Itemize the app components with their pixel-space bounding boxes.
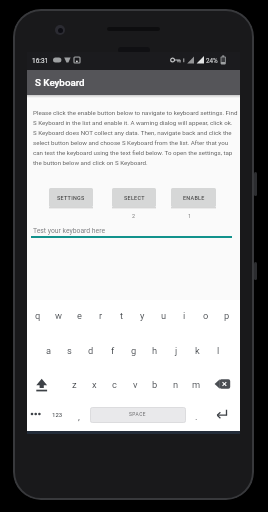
staticText: n [173,379,179,390]
button[interactable]: Test your keyboard here [31,222,237,239]
button[interactable]: SPACE [90,407,186,423]
staticText: SPACE [129,412,147,418]
button[interactable]: e [69,306,90,324]
button[interactable]: r [90,306,111,324]
button[interactable]: m [186,375,206,393]
staticText: 123 [52,411,63,418]
staticText: 24% [206,57,218,64]
staticText: e [77,310,82,321]
button[interactable]: b [145,375,165,393]
button[interactable]: . [183,408,209,424]
staticText: k [195,345,200,356]
staticText: S Keyboard [35,77,85,88]
staticText: b [152,379,158,390]
staticText: u [161,310,167,321]
button[interactable]: SETTINGS [49,188,93,207]
staticText: f [111,345,115,356]
staticText: m [192,379,201,390]
button[interactable] [212,405,234,423]
staticText: 2 [132,213,136,219]
staticText: x [92,379,97,390]
staticText: o [203,310,209,321]
button[interactable]: x [84,375,104,393]
button[interactable]: g [123,341,144,359]
button[interactable]: h [144,341,165,359]
staticText: h [152,345,158,356]
staticText: c [112,379,117,390]
staticText: g [131,345,137,356]
staticText: j [175,345,178,356]
staticText: v [133,379,138,390]
staticText: a [46,345,52,356]
button[interactable] [30,375,54,393]
button[interactable]: 123 [44,406,70,422]
button[interactable]: p [216,306,237,324]
button[interactable]: l [208,341,229,359]
button[interactable]: o [195,306,216,324]
button[interactable]: c [104,375,124,393]
button[interactable]: i [174,306,195,324]
button[interactable]: y [132,306,153,324]
staticText: t [120,310,124,321]
staticText: r [99,310,103,321]
button[interactable]: w [48,306,69,324]
button[interactable]: a [38,341,59,359]
button[interactable]: k [187,341,208,359]
staticText: Test your keyboard here [33,227,106,235]
button[interactable]: d [80,341,101,359]
staticText: l [217,345,220,356]
staticText: 1 [188,213,192,219]
button[interactable]: s [59,341,80,359]
staticText: SELECT [124,195,145,201]
button[interactable] [27,405,47,423]
staticText: y [140,310,145,321]
button[interactable]: u [153,306,174,324]
button[interactable]: t [111,306,132,324]
button[interactable]: n [166,375,186,393]
button[interactable]: f [102,341,123,359]
staticText: ENABLE [183,195,205,201]
button[interactable] [212,375,236,393]
staticText: s [67,345,72,356]
staticText: , [78,411,80,422]
staticText: d [88,345,94,356]
staticText: 16:31 [32,57,49,65]
button[interactable]: j [166,341,187,359]
button[interactable]: v [125,375,145,393]
staticText: w [55,310,62,321]
staticText: z [72,379,77,390]
button[interactable]: SELECT [112,188,156,207]
staticText: SETTINGS [57,195,85,201]
staticText: Please click the enable button below to … [33,109,240,170]
staticText: i [183,310,186,321]
button[interactable]: ENABLE [171,188,216,207]
staticText: q [35,310,41,321]
button[interactable]: , [66,408,92,424]
button[interactable]: z [64,375,84,393]
button[interactable]: q [27,306,48,324]
staticText: . [195,411,198,422]
staticText: p [224,310,230,321]
